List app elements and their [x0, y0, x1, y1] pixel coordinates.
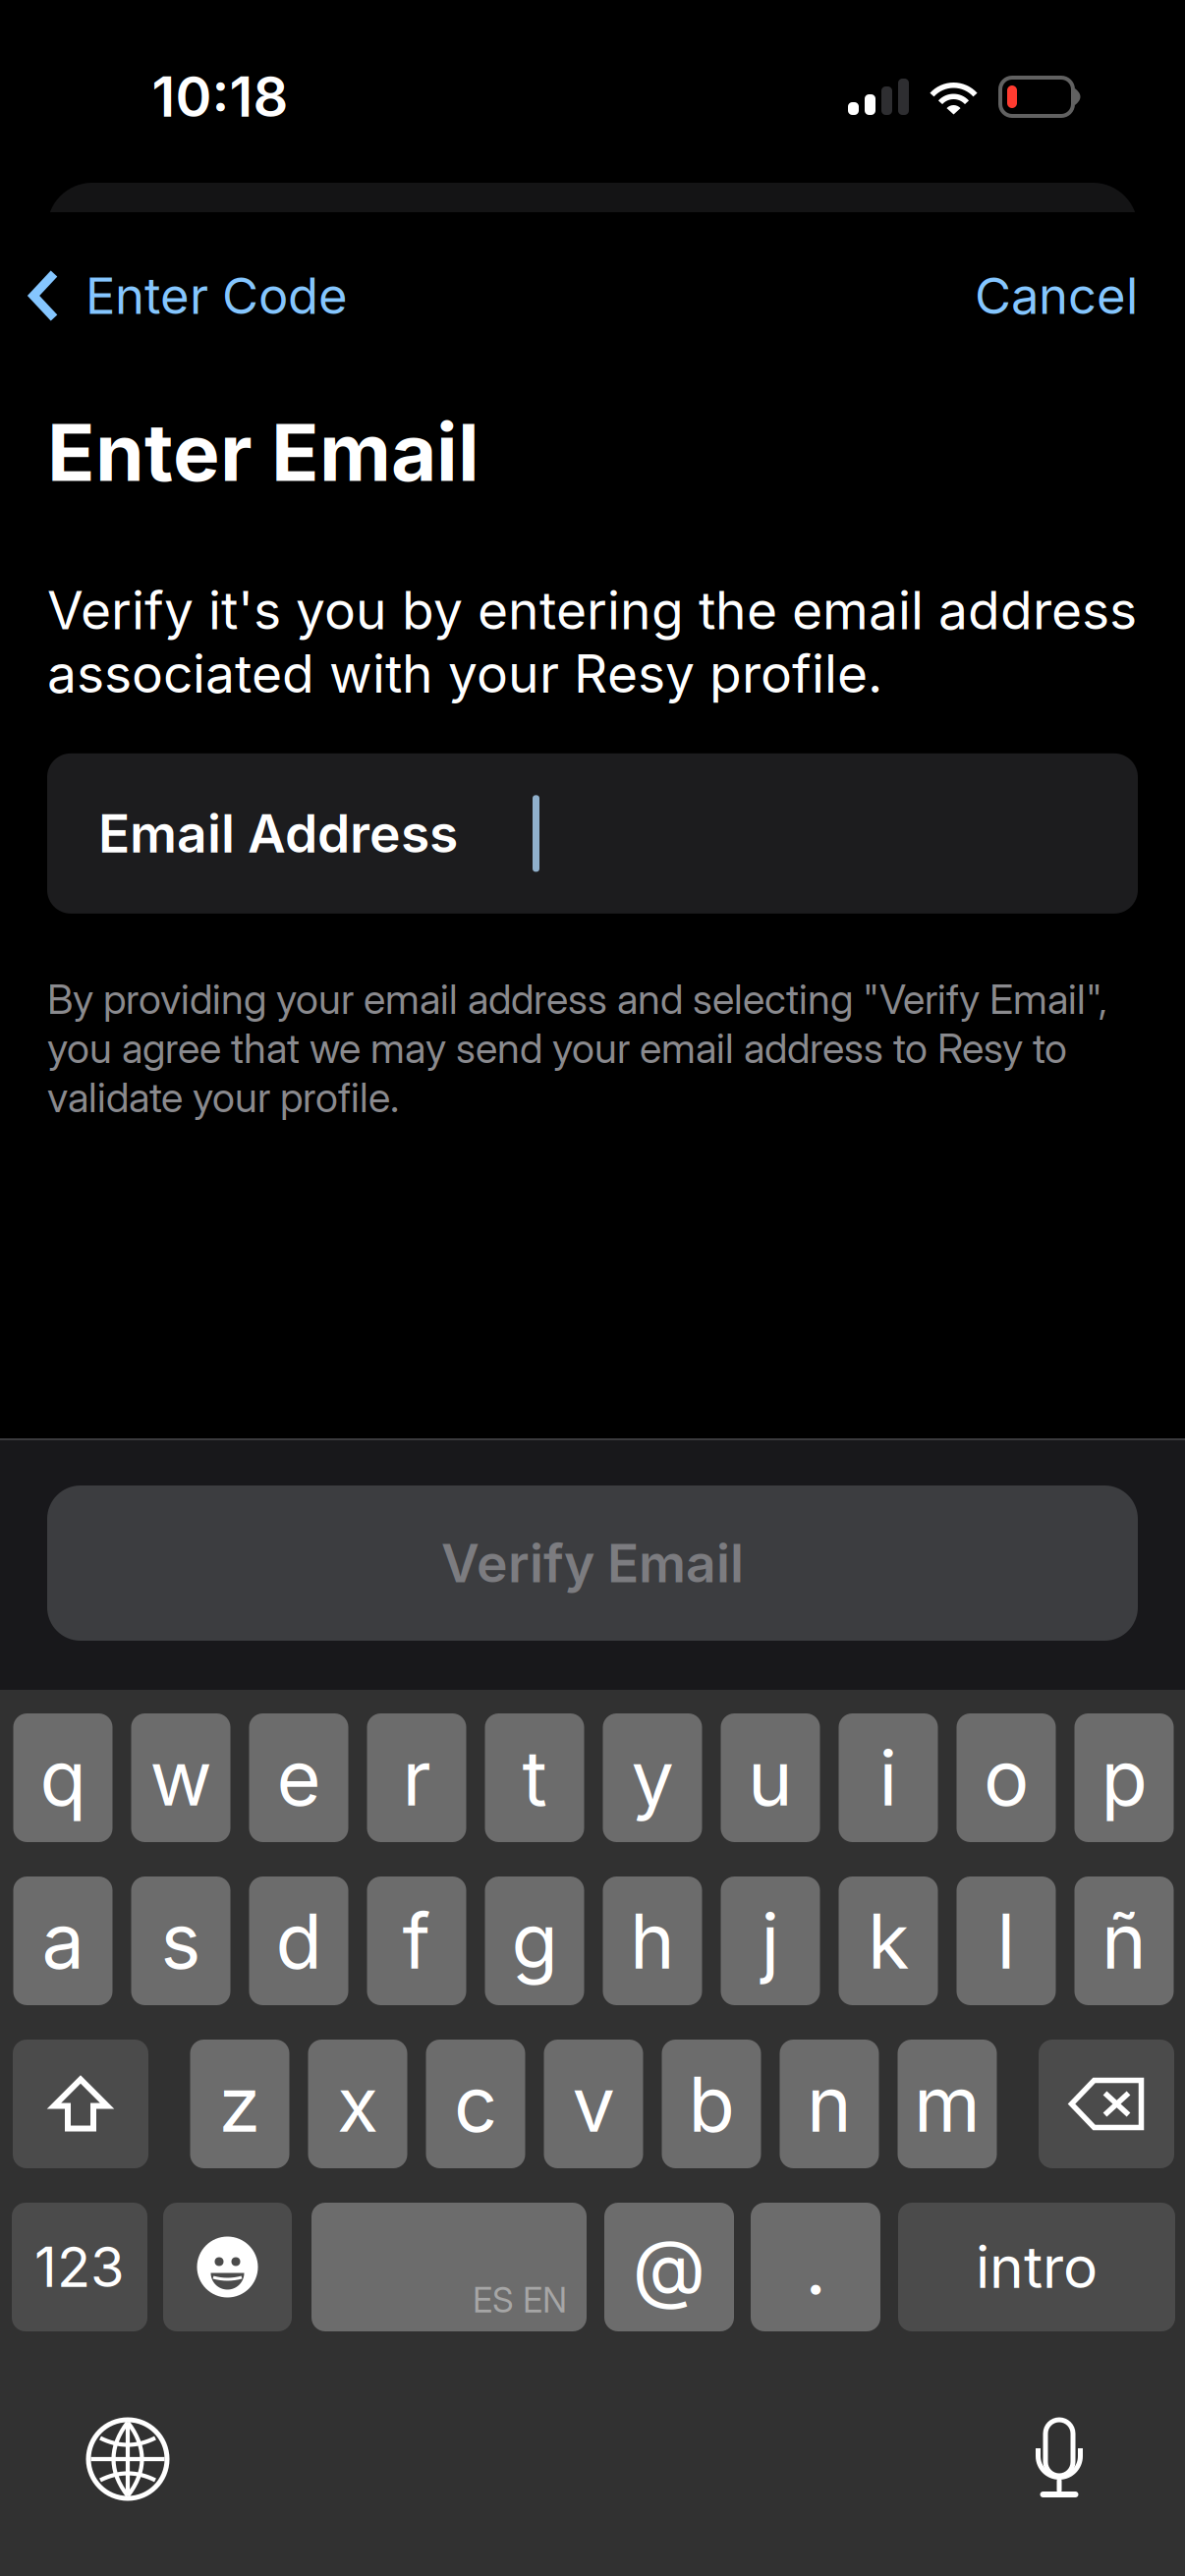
staticText: d [276, 1895, 322, 1987]
button[interactable]: intro [898, 2203, 1175, 2331]
staticText: z [219, 2058, 261, 2150]
staticText: j [761, 1895, 780, 1987]
button[interactable]: u [721, 1713, 820, 1842]
staticText: Enter Email [47, 405, 480, 500]
button[interactable]: @ [604, 2203, 734, 2331]
staticText: Email Address [98, 802, 458, 865]
button[interactable]: k [839, 1876, 938, 2005]
staticText: @ [632, 2221, 706, 2313]
staticText: i [879, 1732, 898, 1824]
button[interactable]: b [662, 2040, 761, 2168]
button[interactable]: q [13, 1713, 113, 1842]
staticText: g [511, 1895, 558, 1987]
staticText: . [805, 2221, 826, 2313]
staticText: p [1101, 1732, 1147, 1824]
staticText: s [161, 1895, 201, 1987]
button[interactable]: ñ [1074, 1876, 1174, 2005]
staticText: 10:18 [152, 63, 288, 130]
staticText: v [572, 2058, 615, 2150]
button[interactable]: i [839, 1713, 938, 1842]
staticText: w [150, 1732, 212, 1824]
button[interactable]: d [249, 1876, 348, 2005]
button[interactable]: w [131, 1713, 230, 1842]
button[interactable]: h [603, 1876, 702, 2005]
staticText: n [807, 2058, 852, 2150]
button[interactable]: Shift [13, 2040, 148, 2168]
button[interactable]: Cancel [928, 232, 1185, 360]
staticText: o [984, 1732, 1029, 1824]
staticText: Cancel [975, 266, 1138, 326]
staticText: q [40, 1732, 86, 1824]
staticText: intro [976, 2232, 1098, 2302]
button[interactable]: t [485, 1713, 584, 1842]
button[interactable]: 123 [12, 2203, 147, 2331]
staticText: By providing your email address and sele… [47, 974, 1107, 1122]
button[interactable]: Emoji [163, 2203, 292, 2331]
button[interactable]: x [308, 2040, 407, 2168]
button[interactable]: a [13, 1876, 113, 2005]
staticText: Verify it's you by entering the email ad… [47, 578, 1137, 705]
staticText: f [402, 1895, 431, 1987]
staticText: e [277, 1732, 321, 1824]
button[interactable]: e [249, 1713, 348, 1842]
staticText: ES EN [473, 2279, 567, 2321]
staticText: m [914, 2058, 981, 2150]
staticText: r [402, 1732, 431, 1824]
staticText: y [631, 1732, 674, 1824]
button[interactable]: o [957, 1713, 1056, 1842]
button[interactable]: Dictate [1012, 2406, 1106, 2512]
staticText: c [454, 2058, 497, 2150]
staticText: Verify Email [441, 1531, 744, 1595]
button[interactable]: j [721, 1876, 820, 2005]
button[interactable]: f [367, 1876, 466, 2005]
staticText: h [630, 1895, 675, 1987]
staticText: u [748, 1732, 793, 1824]
button[interactable]: c [426, 2040, 525, 2168]
button[interactable]: Verify Email [47, 1485, 1138, 1641]
button[interactable]: g [485, 1876, 584, 2005]
staticText: a [42, 1895, 84, 1987]
button[interactable]: z [190, 2040, 289, 2168]
button[interactable]: r [367, 1713, 466, 1842]
button[interactable]: m [898, 2040, 997, 2168]
button[interactable]: p [1074, 1713, 1174, 1842]
staticText: l [997, 1895, 1016, 1987]
staticText: x [337, 2058, 378, 2150]
button[interactable]: Next keyboard [66, 2403, 190, 2515]
staticText: k [868, 1895, 909, 1987]
staticText: ñ [1101, 1895, 1147, 1987]
button[interactable]: v [544, 2040, 643, 2168]
button[interactable]: . [751, 2203, 880, 2331]
button[interactable]: l [957, 1876, 1056, 2005]
button[interactable]: Space [311, 2203, 587, 2331]
button[interactable]: Delete [1039, 2040, 1174, 2168]
button[interactable]: s [131, 1876, 230, 2005]
button[interactable]: n [780, 2040, 879, 2168]
staticText: 123 [34, 2234, 125, 2300]
staticText: Enter Code [85, 266, 348, 326]
button[interactable]: y [603, 1713, 702, 1842]
button[interactable]: Enter Code [0, 232, 371, 360]
staticText: b [688, 2058, 734, 2150]
staticText: t [522, 1732, 547, 1824]
